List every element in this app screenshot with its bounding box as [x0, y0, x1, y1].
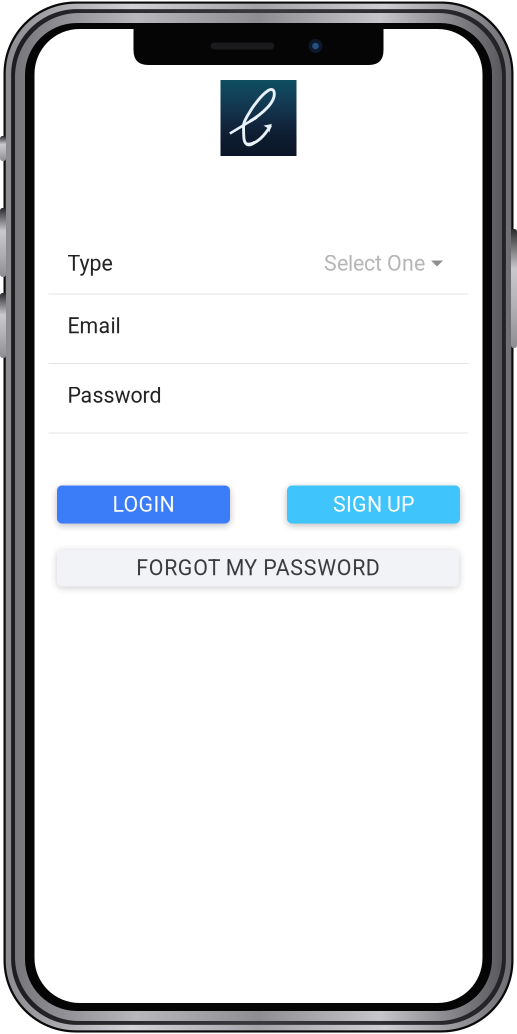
staticText: Email: [67, 313, 120, 338]
staticText: FORGOT MY PASSWORD: [136, 555, 380, 580]
staticText: LOGIN: [112, 492, 174, 517]
staticText: SIGN UP: [333, 492, 414, 517]
staticText: Select One: [324, 251, 425, 276]
staticText: Password: [67, 383, 161, 408]
staticText: Type: [67, 251, 112, 276]
button[interactable]: FORGOT MY PASSWORD: [57, 549, 459, 586]
button[interactable]: SIGN UP: [287, 485, 460, 523]
button[interactable]: LOGIN: [57, 485, 230, 523]
